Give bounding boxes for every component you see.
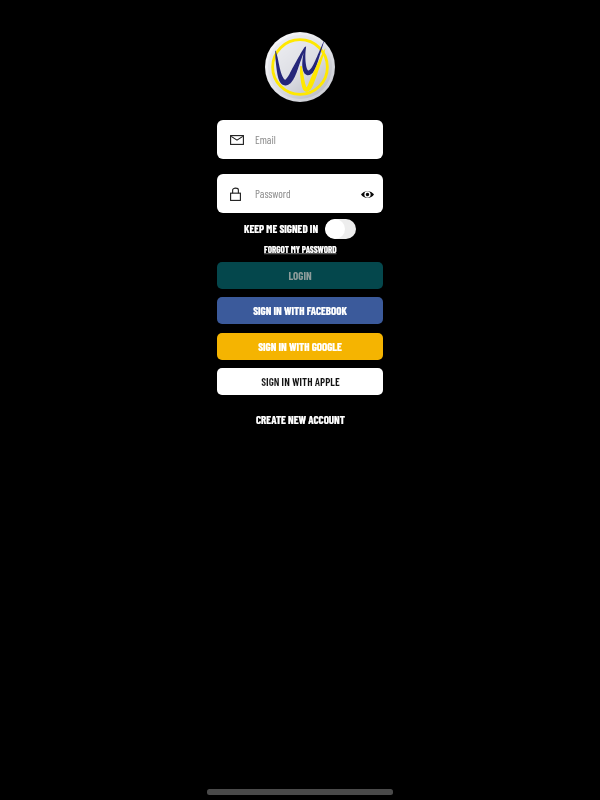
button[interactable]: SIGN IN WITH FACEBOOK [217,297,383,324]
button[interactable]: Email [217,120,383,159]
staticText: Email [255,133,276,146]
staticText: Password [255,187,291,200]
button[interactable]: SIGN IN WITH GOOGLE [217,333,383,360]
button[interactable]: Show password [357,184,377,204]
button[interactable]: KEEP ME SIGNED IN [244,217,356,241]
staticText: FORGOT MY PASSWORD [264,244,337,255]
staticText: LOGIN [288,269,312,282]
staticText: CREATE NEW ACCOUNT [256,413,345,426]
button[interactable]: Password [217,174,383,213]
staticText: SIGN IN WITH APPLE [261,375,340,388]
staticText: SIGN IN WITH GOOGLE [258,340,342,353]
staticText: SIGN IN WITH FACEBOOK [253,304,347,317]
button[interactable]: CREATE NEW ACCOUNT [250,410,351,429]
button[interactable]: FORGOT MY PASSWORD [260,242,341,257]
button[interactable]: SIGN IN WITH APPLE [217,368,383,395]
staticText: KEEP ME SIGNED IN [244,222,319,235]
button[interactable]: LOGIN [217,262,383,289]
